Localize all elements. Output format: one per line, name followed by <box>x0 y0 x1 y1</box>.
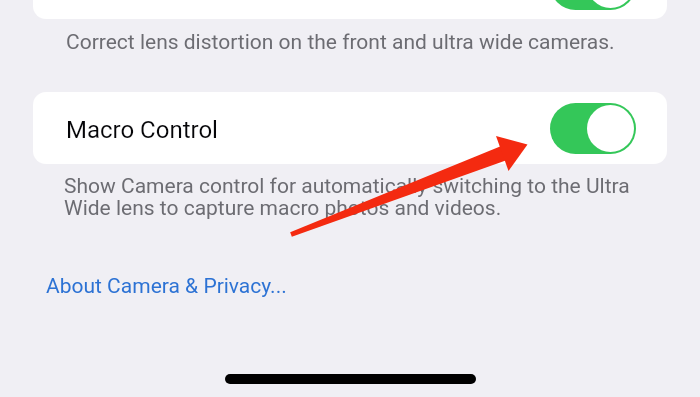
button[interactable]: Toggle on <box>33 0 667 19</box>
button[interactable]: Macro Control <box>33 92 667 164</box>
staticText: About Camera & Privacy... <box>46 274 287 299</box>
button[interactable]: Toggle on <box>550 103 636 154</box>
staticText: Macro Control <box>66 116 218 144</box>
staticText: Show Camera control for automatically sw… <box>64 174 630 221</box>
button[interactable]: Toggle on <box>550 0 636 10</box>
button[interactable]: About Camera & Privacy... <box>40 270 293 303</box>
staticText: Correct lens distortion on the front and… <box>66 30 615 55</box>
